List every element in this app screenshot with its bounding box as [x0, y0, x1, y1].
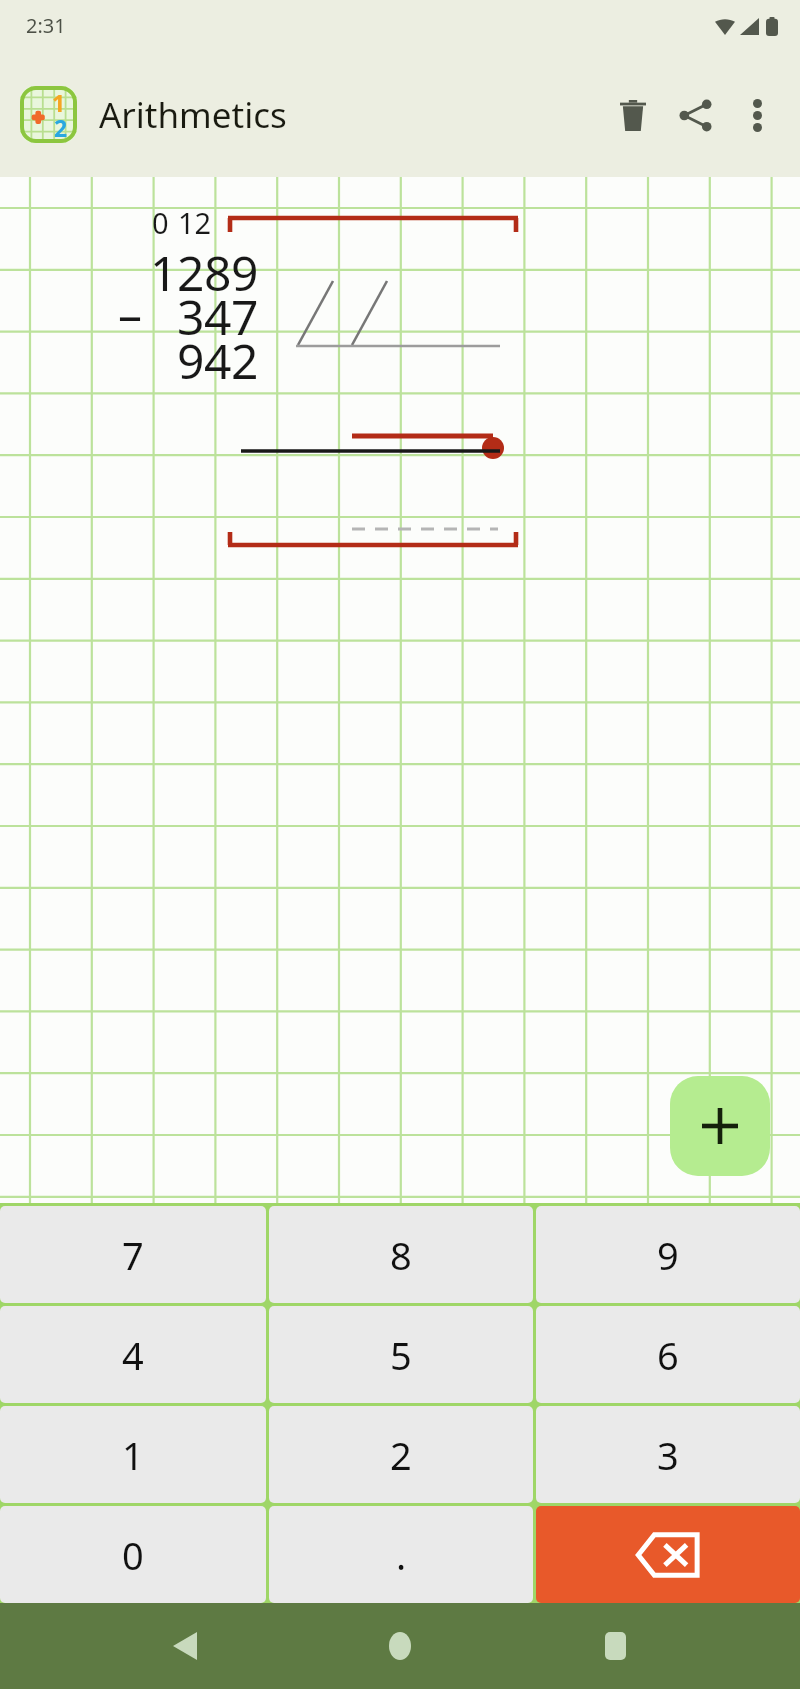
- button[interactable]: Recents: [585, 1616, 645, 1676]
- staticText: 3: [177, 284, 205, 349]
- staticText: 8: [204, 240, 232, 305]
- staticText: 9: [231, 240, 259, 305]
- staticText: 7: [122, 1229, 144, 1281]
- button[interactable]: 9: [536, 1206, 800, 1303]
- staticText: 12: [178, 203, 212, 242]
- staticText: 4: [204, 328, 232, 393]
- button[interactable]: 4: [0, 1306, 266, 1403]
- button[interactable]: 8: [269, 1206, 533, 1303]
- button[interactable]: Backspace: [536, 1506, 800, 1603]
- staticText: 9: [657, 1229, 679, 1281]
- button[interactable]: Home: [370, 1616, 430, 1676]
- staticText: 2: [390, 1429, 412, 1481]
- button[interactable]: 1: [0, 1406, 266, 1503]
- staticText: 1: [150, 240, 178, 305]
- staticText: 8: [390, 1229, 412, 1281]
- staticText: 2: [54, 112, 68, 143]
- button[interactable]: Add: [670, 1076, 770, 1176]
- button[interactable]: Back: [155, 1616, 215, 1676]
- button[interactable]: .: [269, 1506, 533, 1603]
- button[interactable]: 7: [0, 1206, 266, 1303]
- staticText: 1: [122, 1429, 144, 1481]
- staticText: 7: [231, 284, 259, 349]
- staticText: 0: [152, 203, 169, 242]
- staticText: 2: [177, 240, 205, 305]
- staticText: 5: [390, 1329, 412, 1381]
- staticText: 2: [231, 328, 259, 393]
- staticText: 6: [657, 1329, 679, 1381]
- button[interactable]: Arithmetics icon: [20, 86, 77, 143]
- staticText: 0: [122, 1529, 144, 1581]
- button[interactable]: 0: [0, 1506, 266, 1603]
- button[interactable]: 6: [536, 1306, 800, 1403]
- button[interactable]: Delete: [602, 84, 664, 146]
- staticText: 9: [177, 328, 205, 393]
- staticText: 4: [204, 284, 232, 349]
- button[interactable]: More options: [726, 84, 788, 146]
- staticText: Arithmetics: [99, 91, 287, 139]
- button[interactable]: 2: [269, 1406, 533, 1503]
- staticText: 4: [122, 1329, 144, 1381]
- button[interactable]: Share: [664, 84, 726, 146]
- button[interactable]: 3: [536, 1406, 800, 1503]
- staticText: .: [396, 1529, 407, 1581]
- staticText: –: [118, 281, 143, 346]
- staticText: 1: [52, 87, 66, 118]
- button[interactable]: 0: [0, 177, 800, 1203]
- staticText: 3: [657, 1429, 679, 1481]
- button[interactable]: 5: [269, 1306, 533, 1403]
- staticText: 2:31: [26, 12, 66, 39]
